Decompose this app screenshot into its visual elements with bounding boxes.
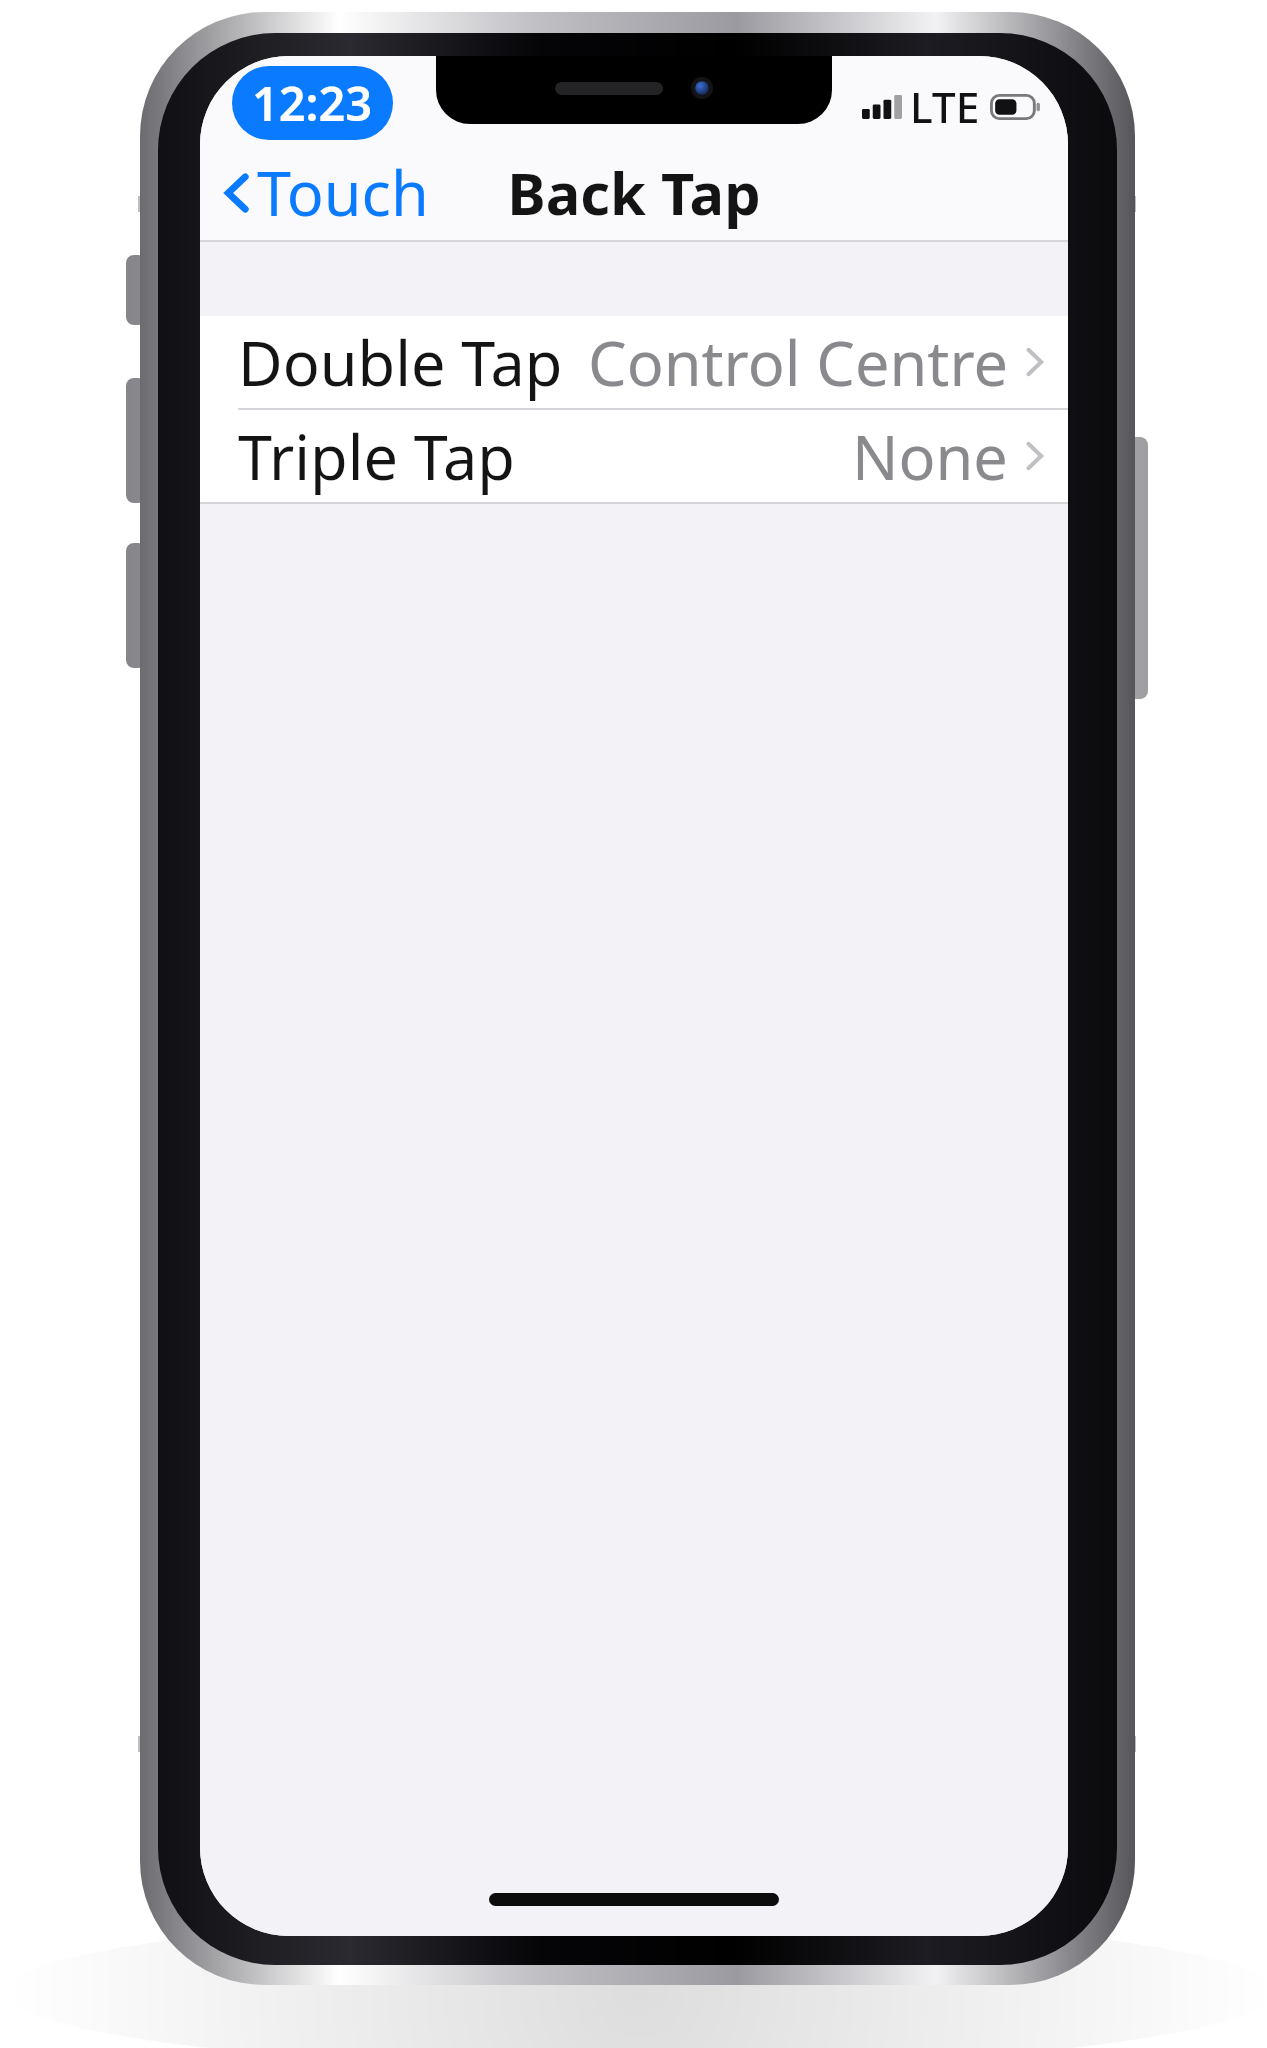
staticText: Double Tap [238, 321, 563, 404]
staticText: Back Tap [507, 153, 761, 232]
staticText: None [852, 415, 1008, 498]
button[interactable]: Double Tap [200, 316, 1068, 408]
button[interactable]: Touch [218, 143, 435, 242]
staticText: Control Centre [588, 321, 1008, 404]
button[interactable]: Triple Tap [200, 410, 1068, 502]
staticText: 12:23 [252, 71, 373, 135]
staticText: Touch [257, 151, 429, 234]
staticText: LTE [910, 78, 980, 136]
staticText: Triple Tap [238, 415, 515, 498]
